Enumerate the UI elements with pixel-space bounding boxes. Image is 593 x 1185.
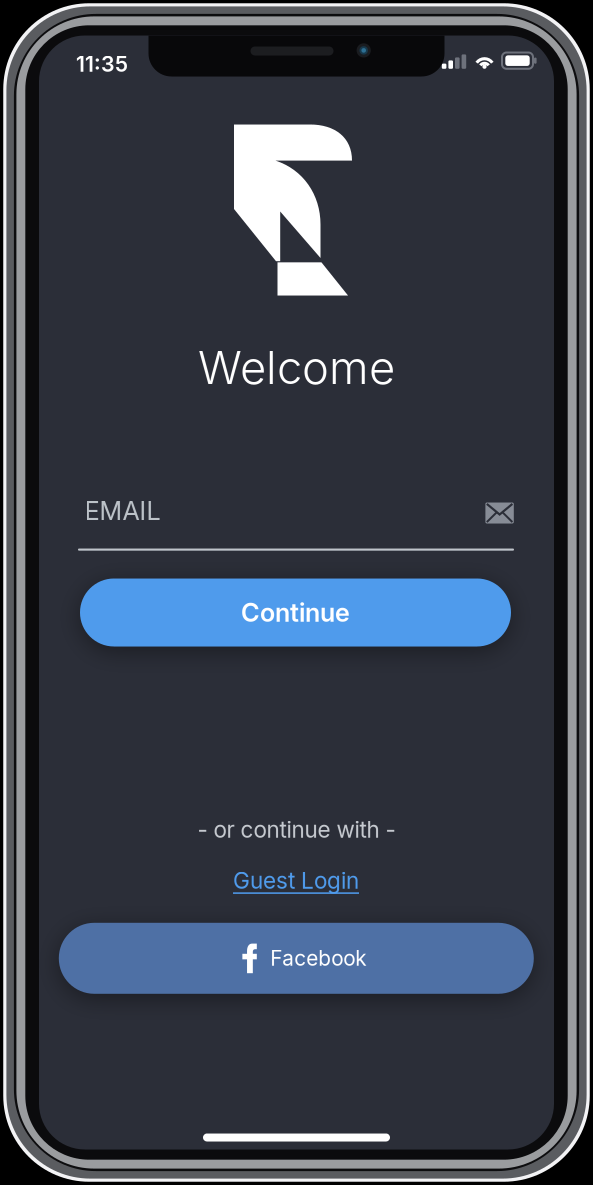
staticText: EMAIL [85, 495, 161, 526]
staticText: Welcome [198, 340, 395, 395]
button[interactable]: Guest Login [216, 865, 376, 895]
button[interactable]: Continue [80, 578, 511, 646]
staticText: Continue [241, 597, 350, 628]
staticText: Guest Login [233, 867, 359, 894]
staticText: 11:35 [76, 51, 128, 77]
staticText: Facebook [270, 946, 366, 971]
button[interactable]: Facebook [59, 923, 534, 994]
staticText: - or continue with - [197, 816, 395, 843]
